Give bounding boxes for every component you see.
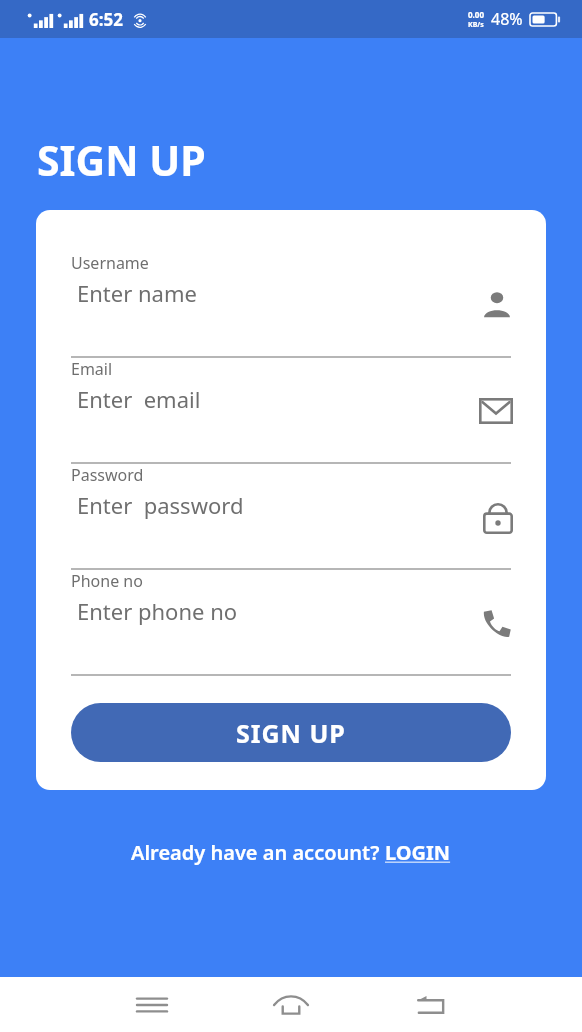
- staticText: Enter name: [77, 278, 197, 308]
- button[interactable]: Email: [36, 358, 546, 464]
- staticText: SIGN UP: [236, 716, 346, 750]
- staticText: 0.00: [468, 9, 484, 20]
- staticText: LOGIN: [385, 839, 451, 866]
- button[interactable]: Back: [403, 977, 459, 1032]
- button[interactable]: Already have an account?: [131, 839, 451, 866]
- staticText: KB/s: [468, 20, 484, 30]
- staticText: Username: [71, 252, 149, 274]
- button[interactable]: Password: [36, 464, 546, 570]
- other: Phone number: [481, 607, 513, 639]
- staticText: Enter phone no: [77, 596, 238, 626]
- staticText: Enter email: [77, 384, 201, 414]
- other: Password: [483, 500, 513, 534]
- button[interactable]: Menu: [124, 977, 180, 1032]
- other: Email: [479, 398, 513, 424]
- staticText: 48%: [491, 8, 523, 30]
- staticText: 6:52: [89, 8, 123, 31]
- staticText: Password: [71, 464, 144, 486]
- staticText: Phone no: [71, 570, 143, 592]
- staticText: Email: [71, 358, 113, 380]
- button[interactable]: Username: [36, 252, 546, 358]
- button[interactable]: SIGN UP: [71, 703, 511, 762]
- other: Username: [481, 289, 513, 321]
- staticText: SIGN UP: [37, 132, 206, 188]
- staticText: Already have an account?: [131, 839, 385, 866]
- button[interactable]: Phone no: [36, 570, 546, 676]
- button[interactable]: Home: [263, 977, 319, 1032]
- staticText: Enter password: [77, 490, 244, 520]
